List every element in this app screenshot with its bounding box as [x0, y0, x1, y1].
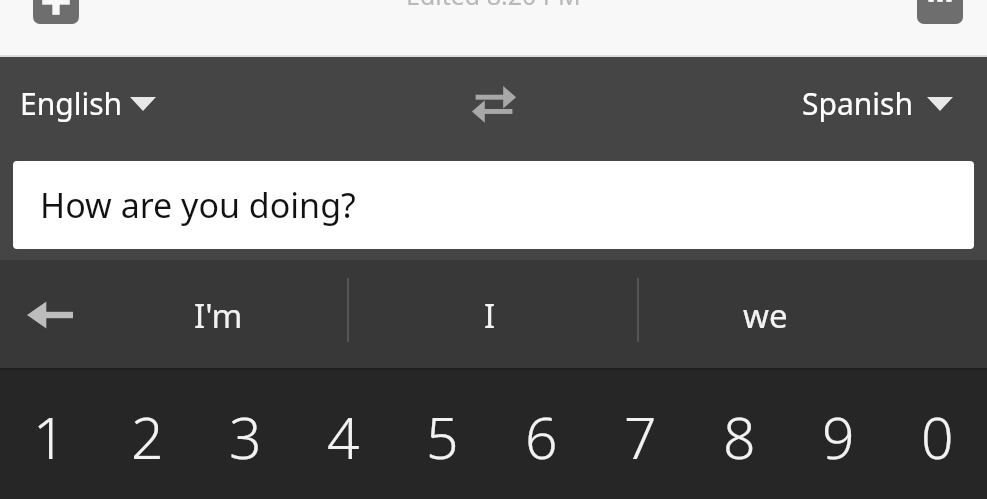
button[interactable]: Back	[0, 260, 100, 370]
staticText: Edited 8:20 PM	[406, 0, 581, 12]
staticText: 8	[723, 398, 756, 476]
button[interactable]: 0	[888, 370, 987, 499]
button[interactable]: 2	[98, 370, 196, 499]
staticText: I	[484, 293, 496, 338]
button[interactable]: I	[380, 260, 600, 370]
button[interactable]: How are you doing?	[13, 161, 974, 249]
button[interactable]: 6	[492, 370, 591, 499]
staticText: we	[743, 293, 788, 338]
button[interactable]: 5	[393, 370, 492, 499]
button[interactable]: I'm	[108, 260, 328, 370]
staticText: 1	[33, 398, 66, 476]
staticText: 7	[624, 398, 657, 476]
button[interactable]: Swap languages	[459, 69, 529, 139]
button[interactable]: we	[655, 260, 875, 370]
button[interactable]: Spanish	[802, 83, 967, 124]
staticText: English	[20, 83, 123, 124]
staticText: 3	[229, 398, 262, 476]
staticText: 9	[822, 398, 855, 476]
button[interactable]: 7	[591, 370, 690, 499]
staticText: Spanish	[802, 83, 913, 124]
staticText: 4	[327, 398, 360, 476]
button[interactable]: 9	[789, 370, 888, 499]
staticText: 6	[525, 398, 558, 476]
staticText: I'm	[194, 293, 243, 338]
staticText: 0	[921, 398, 954, 476]
staticText: 5	[426, 398, 459, 476]
button[interactable]: 3	[196, 370, 294, 499]
button[interactable]: 1	[0, 370, 98, 499]
button[interactable]: Add note	[33, 0, 79, 24]
staticText: 2	[131, 398, 164, 476]
button[interactable]: English	[20, 83, 163, 124]
staticText: How are you doing?	[40, 182, 356, 228]
button[interactable]: 8	[690, 370, 789, 499]
button[interactable]: Keyboard	[917, 0, 963, 24]
button[interactable]: 4	[294, 370, 393, 499]
